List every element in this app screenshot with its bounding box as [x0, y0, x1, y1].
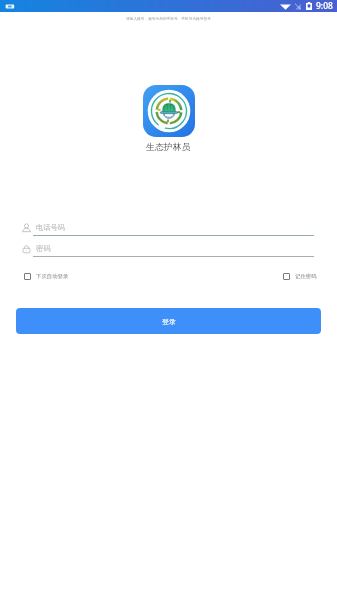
- staticText: 9:08: [316, 0, 333, 12]
- staticText: 下次自动登录: [36, 273, 69, 280]
- button[interactable]: 下次自动登录: [24, 273, 69, 280]
- staticText: 生态护林员: [146, 141, 191, 152]
- staticText: 请输入账号，账号为您的手机号，手机号为账号登录: [126, 16, 211, 21]
- staticText: 记住密码: [295, 273, 317, 280]
- other: Password: [22, 245, 31, 253]
- button[interactable]: 登录: [16, 308, 321, 334]
- staticText: 密码: [36, 244, 51, 253]
- other: Account: [22, 224, 31, 232]
- button[interactable]: 记住密码: [283, 273, 317, 280]
- staticText: 登录: [162, 317, 176, 326]
- staticText: 电话号码: [36, 223, 65, 232]
